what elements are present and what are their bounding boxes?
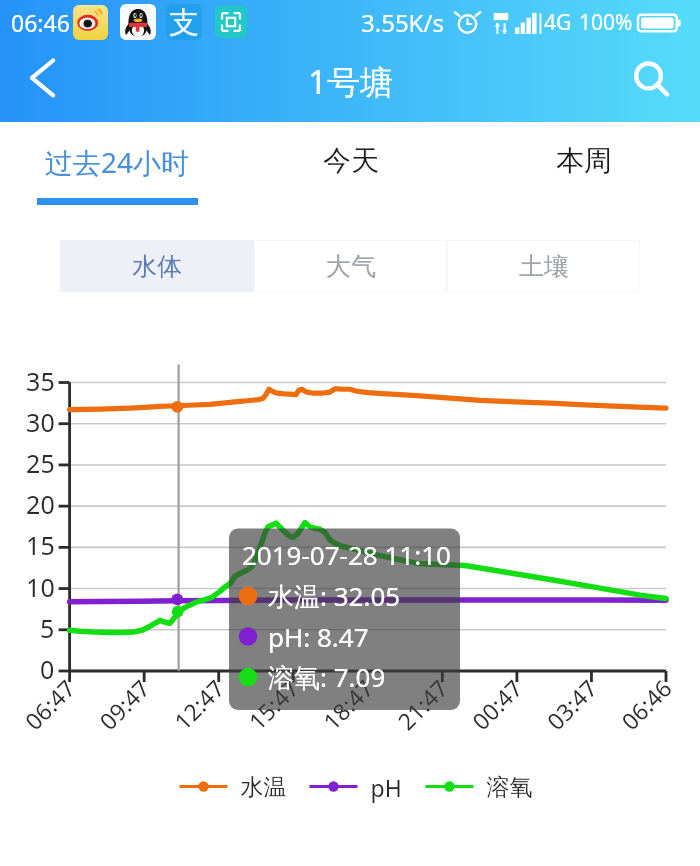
staticText: 4G [544, 8, 572, 37]
button[interactable]: 水体 [60, 240, 254, 292]
staticText: 今天 [323, 143, 379, 178]
button[interactable]: Back [0, 44, 84, 122]
button[interactable]: 大气 [254, 240, 447, 292]
button[interactable]: 过去24小时 [0, 122, 234, 240]
staticText: 本周 [556, 143, 612, 178]
staticText: 过去24小时 [45, 143, 190, 181]
staticText: 水体 [132, 251, 182, 282]
button[interactable]: 今天 [234, 122, 467, 240]
staticText: 土壤 [519, 251, 569, 282]
button[interactable]: Search [616, 44, 700, 122]
staticText: 3.55K/s [361, 6, 444, 39]
staticText: 大气 [326, 251, 376, 282]
staticText: 100% [579, 8, 633, 37]
staticText: 1号塘 [308, 59, 393, 104]
staticText: 支 [169, 4, 199, 40]
staticText: 06:46 [11, 7, 70, 38]
button[interactable]: 土壤 [447, 240, 640, 292]
button[interactable]: 本周 [467, 122, 700, 240]
